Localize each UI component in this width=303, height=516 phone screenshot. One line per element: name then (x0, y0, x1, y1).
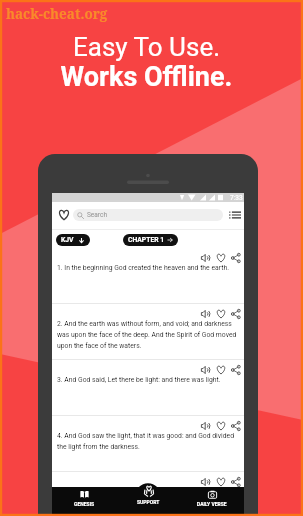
staticText: Easy To Use. (0, 32, 298, 62)
button[interactable]: Share (230, 476, 241, 487)
staticText: Search (87, 211, 107, 219)
staticText: 2. And the earth was without form, and v… (57, 320, 239, 350)
staticText: KJV (61, 236, 74, 244)
button[interactable]: Share (230, 252, 241, 263)
button[interactable]: Favorites (53, 209, 74, 221)
staticText: SUPPORT (137, 499, 160, 505)
button[interactable]: Favorite (215, 252, 226, 263)
staticText: 7:33 (230, 194, 243, 202)
button[interactable]: CHAPTER 1 (123, 234, 178, 246)
staticText: GENESIS (74, 501, 95, 507)
staticText: 4. And God saw the light, that it was go… (57, 432, 239, 451)
staticText: 1. In the beginning God created the heav… (57, 264, 229, 272)
button[interactable]: GENESIS (52, 478, 116, 516)
button[interactable]: Listen (200, 252, 211, 263)
staticText: Works Offline. (0, 61, 298, 93)
button[interactable]: Share (230, 308, 241, 319)
button[interactable]: Favorite (215, 308, 226, 319)
button[interactable]: Favorite (215, 476, 226, 487)
button[interactable]: Listen (200, 476, 211, 487)
button[interactable]: Menu (225, 209, 244, 221)
button[interactable]: Listen (52, 360, 244, 416)
button[interactable]: Favorite (215, 420, 226, 431)
button[interactable]: Share (230, 364, 241, 375)
button[interactable]: Listen (52, 472, 244, 516)
staticText: hack-cheat.org (6, 5, 108, 23)
button[interactable]: Favorite (215, 364, 226, 375)
button[interactable]: Listen (52, 416, 244, 472)
button[interactable]: Share (230, 420, 241, 431)
button[interactable]: SUPPORT (116, 478, 180, 516)
button[interactable]: Search (73, 209, 223, 221)
button[interactable]: Listen (200, 308, 211, 319)
button[interactable]: Listen (200, 420, 211, 431)
button[interactable]: Listen (200, 364, 211, 375)
staticText: DAILY VERSE (197, 501, 227, 507)
staticText: CHAPTER 1 (128, 236, 165, 244)
staticText: 3. And God said, Let there be light: and… (57, 376, 221, 384)
button[interactable]: DAILY VERSE (180, 478, 244, 516)
button[interactable]: Listen (52, 304, 244, 360)
button[interactable]: Listen (52, 248, 244, 304)
button[interactable]: KJV (56, 234, 90, 246)
